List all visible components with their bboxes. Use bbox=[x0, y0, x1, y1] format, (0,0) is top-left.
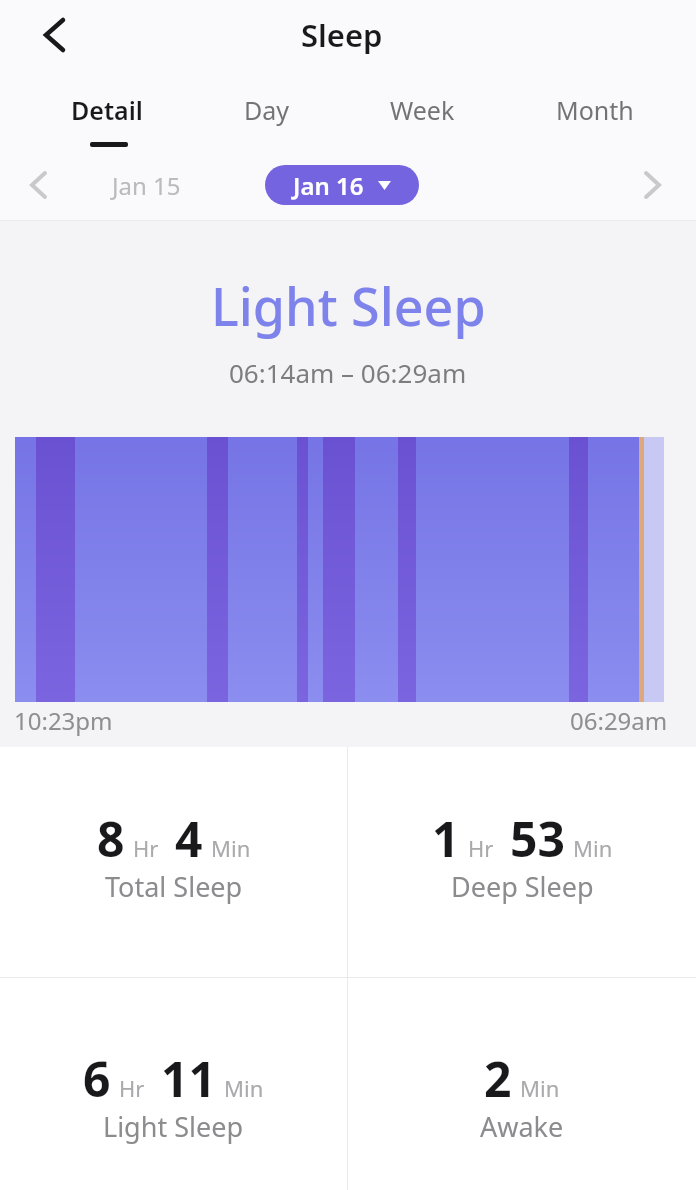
staticText: 11 bbox=[161, 1046, 216, 1111]
button[interactable]: 1 bbox=[348, 747, 696, 977]
staticText: Total Sleep bbox=[105, 868, 243, 905]
staticText: Hr bbox=[468, 833, 494, 863]
staticText: Jan 15 bbox=[112, 169, 181, 202]
staticText: 06:29am bbox=[570, 704, 668, 737]
staticText: 6 bbox=[83, 1046, 111, 1111]
staticText: 53 bbox=[510, 806, 565, 871]
staticText: Awake bbox=[480, 1108, 564, 1145]
staticText: Hr bbox=[133, 833, 159, 863]
staticText: Sleep bbox=[301, 14, 383, 56]
button[interactable]: Day bbox=[244, 93, 290, 127]
staticText: 06:14am – 06:29am bbox=[229, 355, 467, 390]
button[interactable]: Week bbox=[390, 93, 455, 127]
button[interactable] bbox=[34, 15, 74, 55]
staticText: Day bbox=[244, 93, 290, 127]
staticText: Hr bbox=[119, 1073, 145, 1103]
staticText: 8 bbox=[97, 806, 125, 871]
button[interactable] bbox=[634, 167, 670, 203]
staticText: 1 bbox=[432, 806, 460, 871]
staticText: Jan 16 bbox=[293, 169, 364, 202]
button[interactable] bbox=[20, 167, 56, 203]
staticText: Min bbox=[573, 833, 613, 863]
button[interactable]: Month bbox=[556, 93, 634, 127]
button[interactable]: 6 bbox=[0, 978, 347, 1190]
staticText: Detail bbox=[71, 93, 143, 127]
staticText: 2 bbox=[484, 1046, 512, 1111]
staticText: 10:23pm bbox=[14, 704, 113, 737]
button[interactable]: Detail bbox=[71, 93, 143, 127]
staticText: Light Sleep bbox=[103, 1108, 244, 1145]
staticText: Deep Sleep bbox=[451, 868, 594, 905]
staticText: Light Sleep bbox=[211, 270, 486, 341]
staticText: Min bbox=[211, 833, 251, 863]
button[interactable]: 2 bbox=[348, 978, 696, 1190]
button[interactable]: Jan 16 bbox=[265, 165, 419, 205]
button[interactable]: 8 bbox=[0, 747, 347, 977]
staticText: Min bbox=[224, 1073, 264, 1103]
staticText: Week bbox=[390, 93, 455, 127]
staticText: Min bbox=[520, 1073, 560, 1103]
staticText: 4 bbox=[175, 806, 203, 871]
staticText: Month bbox=[556, 93, 634, 127]
button[interactable]: Jan 15 bbox=[0, 150, 292, 220]
